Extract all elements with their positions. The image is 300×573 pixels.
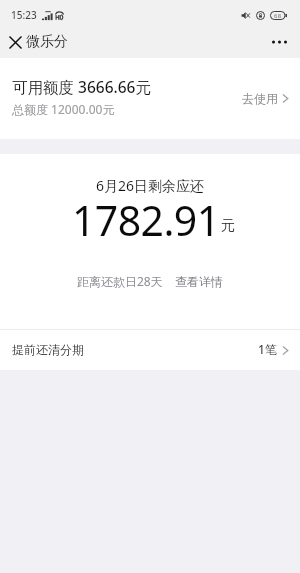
staticText: 68 [274, 12, 282, 20]
staticText: 微乐分 [26, 33, 68, 51]
staticText: 总额度 12000.00元 [12, 101, 115, 117]
button[interactable]: Close [5, 32, 26, 53]
button[interactable]: More options [267, 30, 291, 54]
staticText: 1笔 [258, 341, 277, 357]
staticText: 距离还款日28天 [77, 273, 163, 289]
staticText: 可用额度 3666.66元 [12, 76, 151, 97]
staticText: 1782.91 [72, 192, 220, 248]
button[interactable]: 去使用 [242, 85, 289, 112]
staticText: 15:23 [11, 8, 37, 22]
staticText: 提前还清分期 [12, 342, 84, 357]
staticText: 元 [221, 217, 235, 235]
staticText: 6月26日剩余应还 [96, 176, 205, 195]
staticText: 去使用 [242, 91, 278, 106]
button[interactable]: 提前还清分期 [0, 330, 300, 370]
button[interactable]: 查看详情 [175, 274, 223, 289]
